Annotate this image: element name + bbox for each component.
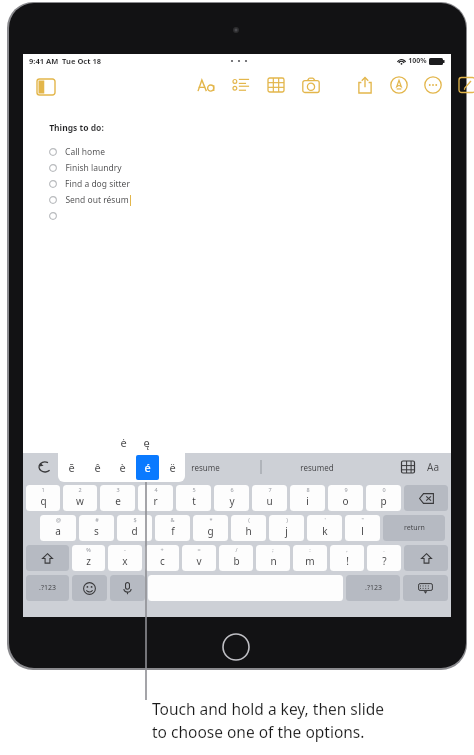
button[interactable]: é <box>136 455 159 480</box>
staticText: ę <box>143 435 150 450</box>
staticText: 3 <box>116 486 120 493</box>
button[interactable]: Checklist <box>230 74 252 96</box>
staticText: " <box>361 516 364 523</box>
button[interactable]: ( <box>231 515 266 541</box>
staticText: ( <box>248 516 250 523</box>
staticText: 9 <box>344 486 348 493</box>
button[interactable]: 1 <box>26 485 60 511</box>
button[interactable]: Find a dog sitter <box>49 176 130 192</box>
staticText: g <box>207 524 214 538</box>
button[interactable]: Hide keyboard <box>403 575 448 601</box>
button[interactable]: + <box>145 545 179 571</box>
button[interactable]: % <box>72 545 105 571</box>
staticText: .?123 <box>365 583 382 593</box>
button[interactable]: " <box>345 515 380 541</box>
button[interactable]: ) <box>269 515 304 541</box>
button[interactable]: 4 <box>138 485 173 511</box>
staticText: 9:41 AM Tue Oct 18 <box>29 56 101 66</box>
button[interactable]: ; <box>256 545 290 571</box>
staticText: + <box>160 546 164 553</box>
staticText: y <box>229 494 235 508</box>
staticText: 1 <box>41 486 45 493</box>
button[interactable]: Format text <box>195 74 217 96</box>
button[interactable]: ē <box>59 455 83 480</box>
button[interactable]: Shift <box>404 545 448 571</box>
button[interactable]: Dictate <box>110 575 145 601</box>
button[interactable]: Finish laundry <box>49 160 122 176</box>
button[interactable]: @ <box>40 515 76 541</box>
staticText: ' <box>324 516 326 523</box>
button[interactable]: 6 <box>214 485 249 511</box>
staticText: 6 <box>230 486 234 493</box>
staticText: ? <box>382 554 387 568</box>
button[interactable]: Format <box>423 457 443 477</box>
staticText: * <box>209 516 213 523</box>
button[interactable]: & <box>155 515 190 541</box>
staticText: ê <box>94 460 101 475</box>
staticText: @ <box>56 516 61 523</box>
button[interactable]: = <box>182 545 216 571</box>
button[interactable]: Emoji <box>72 575 107 601</box>
button[interactable]: New note <box>456 74 474 96</box>
staticText: j <box>285 524 288 538</box>
staticText: v <box>196 554 202 568</box>
button[interactable]: Camera <box>300 74 322 96</box>
button[interactable]: / <box>219 545 253 571</box>
button[interactable]: Send out résum <box>49 192 131 208</box>
button[interactable]: $ <box>117 515 152 541</box>
staticText: Things to do: <box>49 122 104 134</box>
button[interactable]: More <box>422 74 444 96</box>
button[interactable]: return <box>383 515 445 541</box>
button[interactable]: Delete <box>404 485 448 511</box>
button[interactable]: - <box>108 545 142 571</box>
staticText: 0 <box>382 486 386 493</box>
staticText: & <box>170 516 175 523</box>
button[interactable]: ' <box>307 515 342 541</box>
button[interactable]: resumed <box>262 462 372 473</box>
button[interactable]: 5 <box>176 485 211 511</box>
button[interactable]: è <box>111 455 134 480</box>
staticText: h <box>245 524 252 538</box>
staticText: .?123 <box>39 583 56 593</box>
button[interactable]: Table <box>265 74 287 96</box>
button[interactable]: .?123 <box>26 575 69 601</box>
button[interactable]: , <box>330 545 364 571</box>
button[interactable]: 3 <box>100 485 135 511</box>
staticText: t <box>192 494 196 508</box>
button[interactable]: 0 <box>366 485 401 511</box>
button[interactable]: Call home <box>49 144 105 160</box>
button[interactable]: Shift <box>26 545 69 571</box>
button[interactable]: ê <box>85 455 109 480</box>
staticText: $ <box>133 516 137 523</box>
staticText: 7 <box>268 486 272 493</box>
staticText: , <box>346 546 348 553</box>
button[interactable]: * <box>193 515 228 541</box>
staticText: i <box>306 494 309 508</box>
button[interactable]: Undo <box>35 457 55 477</box>
button[interactable]: 7 <box>252 485 287 511</box>
button[interactable]: : <box>293 545 327 571</box>
button[interactable]: Share <box>354 74 376 96</box>
staticText: : <box>309 546 311 553</box>
staticText: to choose one of the options. <box>152 721 365 742</box>
button[interactable]: . <box>367 545 401 571</box>
staticText: q <box>40 494 47 508</box>
button[interactable]: .?123 <box>346 575 400 601</box>
staticText: - <box>124 546 126 553</box>
button[interactable]: ë <box>161 455 184 480</box>
button[interactable]: Sidebar <box>35 76 57 98</box>
button[interactable]: resume <box>150 462 260 473</box>
button[interactable]: Markup <box>388 74 410 96</box>
button[interactable]: Table <box>399 458 417 476</box>
button[interactable]: 8 <box>290 485 325 511</box>
button[interactable]: 2 <box>63 485 97 511</box>
staticText: Finish laundry <box>65 162 122 174</box>
staticText: Aa <box>427 460 439 474</box>
staticText: p <box>380 494 387 508</box>
staticText: u <box>266 494 273 508</box>
staticText: d <box>131 524 138 538</box>
button[interactable]: # <box>79 515 114 541</box>
staticText: resume <box>191 462 220 473</box>
button[interactable]: 9 <box>328 485 363 511</box>
